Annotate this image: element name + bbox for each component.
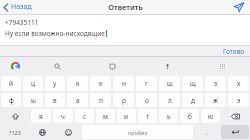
staticText: +79435111	[5, 18, 39, 27]
staticText: ц	[31, 79, 35, 88]
button[interactable]: ш	[159, 76, 180, 91]
button[interactable]: к	[67, 76, 88, 91]
staticText: г	[145, 79, 148, 88]
button[interactable]: ь	[159, 109, 178, 123]
staticText: э	[237, 96, 241, 105]
staticText: щ	[190, 79, 196, 88]
staticText: о	[145, 96, 149, 105]
button[interactable]: р	[113, 93, 134, 107]
button[interactable]: х	[228, 76, 249, 91]
staticText: ч	[61, 112, 65, 121]
button[interactable]: а	[67, 93, 88, 107]
button[interactable]: Эмодзи	[56, 125, 80, 139]
staticText: с	[83, 112, 87, 121]
button[interactable]: т	[138, 109, 157, 123]
staticText: и	[124, 112, 129, 121]
staticText: ш	[167, 79, 173, 88]
button[interactable]: я	[31, 109, 51, 123]
button[interactable]: ц	[23, 76, 43, 91]
staticText: ж	[213, 96, 218, 105]
staticText: ы	[31, 96, 36, 105]
staticText: п	[99, 96, 103, 105]
button[interactable]: пробел	[82, 125, 193, 139]
button[interactable]: л	[159, 93, 180, 107]
staticText: ю	[208, 112, 214, 121]
staticText: л	[168, 96, 172, 105]
staticText: к	[76, 79, 80, 88]
button[interactable]: ч	[53, 109, 73, 123]
button[interactable]: щ	[182, 76, 203, 91]
staticText: я	[39, 112, 43, 121]
button[interactable]: у	[45, 76, 65, 91]
button[interactable]: Backspace	[222, 109, 249, 123]
staticText: ?123	[9, 129, 21, 136]
button[interactable]: е	[90, 76, 111, 91]
staticText: б	[188, 112, 192, 121]
staticText: й	[9, 79, 14, 88]
button[interactable]: ы	[23, 93, 43, 107]
staticText: н	[122, 79, 126, 88]
staticText: Готово	[223, 47, 245, 56]
button[interactable]: Ввод	[221, 125, 249, 139]
button[interactable]: Shift	[1, 109, 29, 123]
staticText: ь	[167, 112, 171, 121]
button[interactable]: м	[96, 109, 115, 123]
button[interactable]: ?123	[1, 125, 28, 139]
button[interactable]: Готово	[218, 46, 250, 56]
button[interactable]: Google	[0, 57, 30, 75]
staticText: в	[53, 96, 57, 105]
button[interactable]: ф	[1, 93, 21, 107]
button[interactable]: Отправить	[228, 0, 250, 14]
button[interactable]: ю	[201, 109, 220, 123]
button[interactable]: п	[90, 93, 111, 107]
button[interactable]: Sticker	[85, 57, 140, 75]
button[interactable]: й	[1, 76, 21, 91]
button[interactable]: о	[136, 93, 157, 107]
staticText: х	[237, 79, 241, 88]
staticText: м	[103, 112, 108, 121]
button[interactable]: э	[228, 93, 249, 107]
button[interactable]: н	[113, 76, 134, 91]
staticText: Ну если возможно-нисходящие	[5, 29, 105, 38]
button[interactable]: .	[195, 125, 219, 139]
button[interactable]: Search	[30, 57, 85, 75]
button[interactable]: и	[117, 109, 136, 123]
button[interactable]: Назад	[0, 0, 36, 14]
button[interactable]: ж	[205, 93, 226, 107]
button[interactable]: Mic	[140, 57, 195, 75]
staticText: е	[99, 79, 103, 88]
staticText: у	[53, 79, 57, 88]
button[interactable]: б	[180, 109, 199, 123]
staticText: д	[191, 96, 195, 105]
button[interactable]: з	[205, 76, 226, 91]
staticText: ф	[9, 96, 14, 105]
staticText: пробел	[128, 129, 148, 136]
button[interactable]: г	[136, 76, 157, 91]
staticText: .	[206, 128, 208, 137]
staticText: т	[146, 112, 150, 121]
button[interactable]: д	[182, 93, 203, 107]
button[interactable]: Язык	[30, 125, 54, 139]
button[interactable]: с	[75, 109, 94, 123]
button[interactable]: в	[45, 93, 65, 107]
staticText: р	[122, 96, 126, 105]
staticText: Ответить	[108, 2, 143, 12]
staticText: Назад	[11, 2, 32, 12]
button[interactable]: +79435111	[0, 15, 250, 45]
staticText: з	[214, 79, 218, 88]
button[interactable]: Grid	[195, 57, 250, 75]
staticText: а	[76, 96, 80, 105]
